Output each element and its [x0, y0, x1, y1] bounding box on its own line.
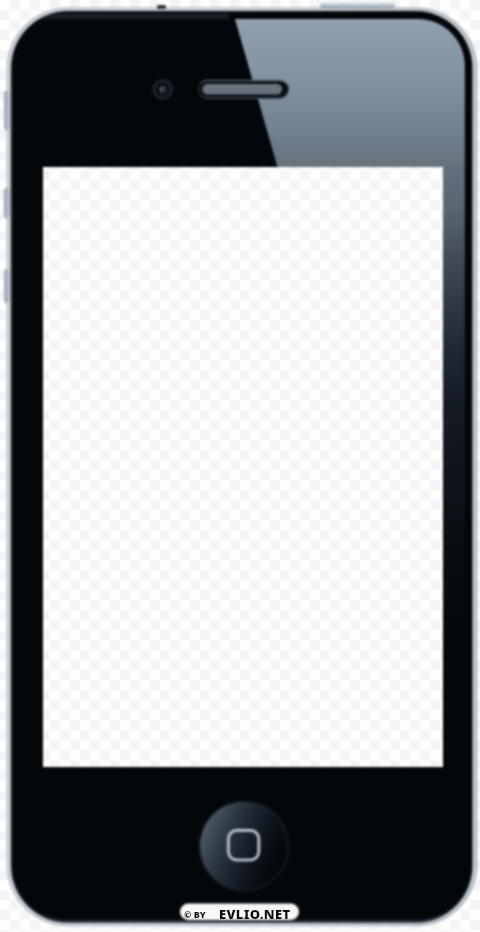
button[interactable]: evlio.net watermark	[184, 905, 296, 923]
staticText: EVLIO.NET	[219, 905, 291, 923]
staticText: © BY	[184, 908, 206, 920]
